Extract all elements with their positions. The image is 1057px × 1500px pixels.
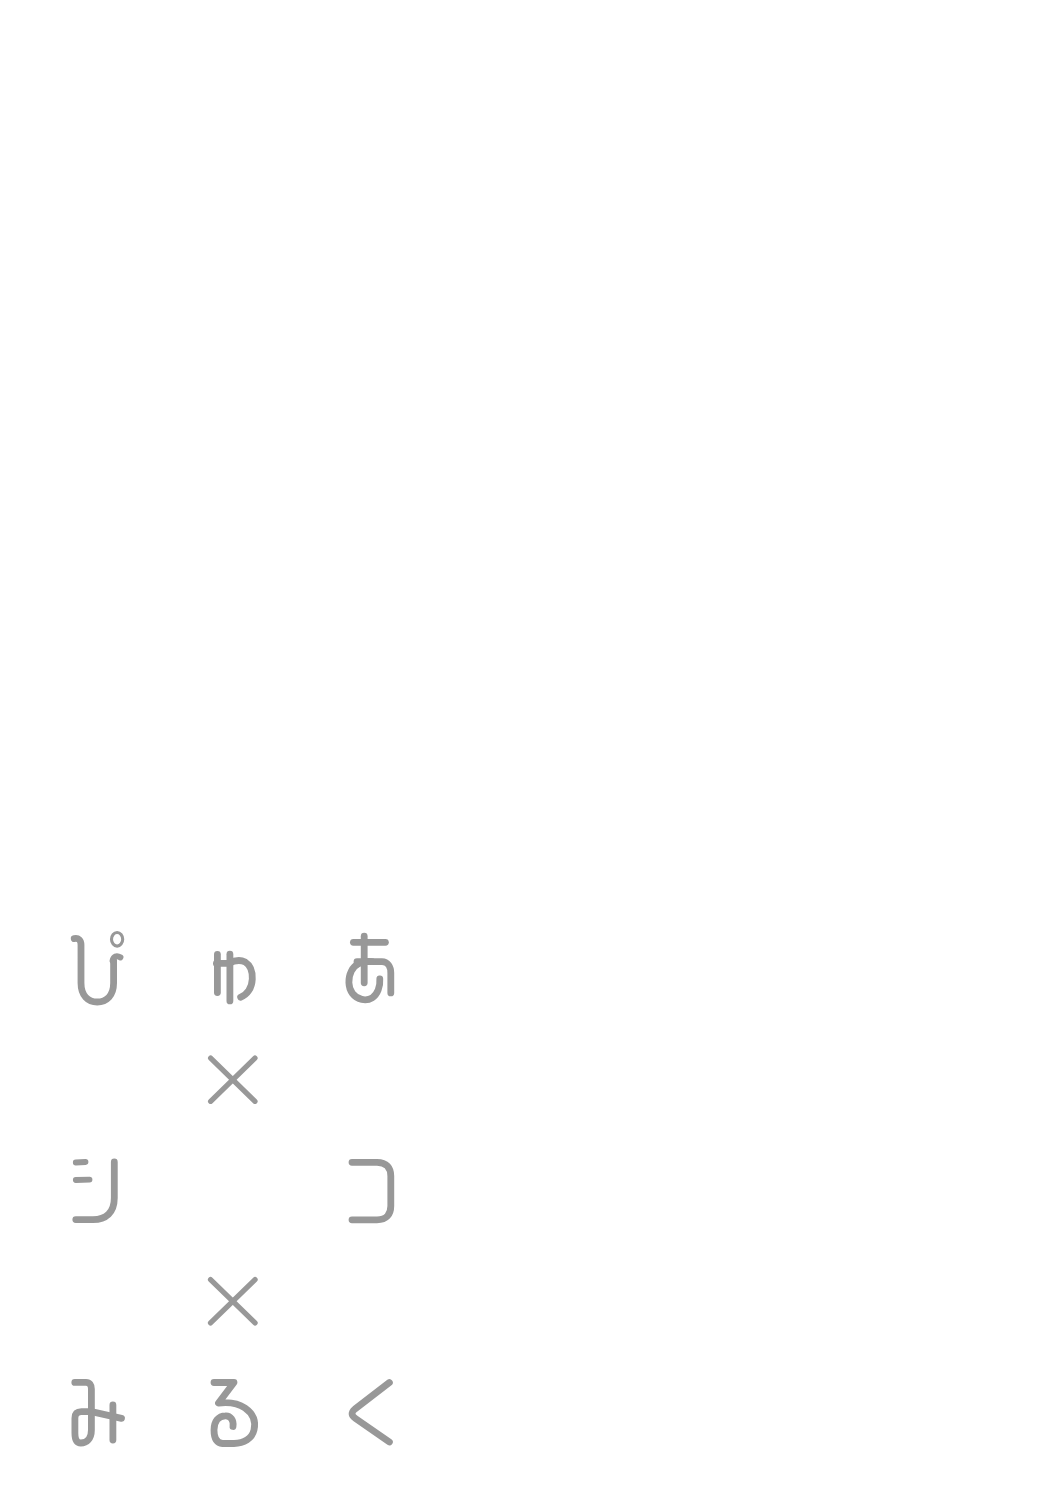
button[interactable]: ぴゅあ × シコ × みるく — [62, 924, 404, 1456]
